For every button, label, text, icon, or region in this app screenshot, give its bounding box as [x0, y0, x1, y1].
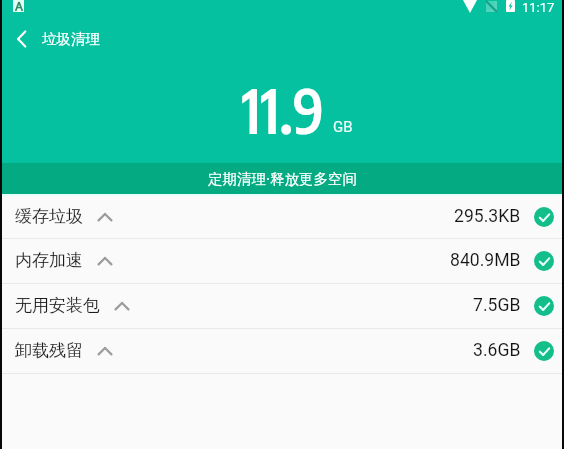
button[interactable]: 内存加速	[0, 239, 564, 284]
staticText: 11.9	[242, 71, 325, 147]
button[interactable]: Selected	[534, 296, 554, 316]
staticText: 无用安装包	[15, 295, 100, 316]
staticText: 11:17	[522, 0, 555, 15]
button[interactable]: Selected	[534, 251, 554, 271]
staticText: 定期清理·释放更多空间	[208, 168, 357, 188]
button[interactable]: Selected	[534, 341, 554, 361]
button[interactable]: 无用安装包	[0, 284, 564, 329]
staticText: 7.5GB	[473, 295, 521, 316]
staticText: 3.6GB	[473, 340, 521, 361]
staticText: GB	[333, 118, 353, 136]
staticText: 840.9MB	[450, 250, 521, 271]
staticText: 垃圾清理	[42, 30, 100, 48]
button[interactable]: 缓存垃圾	[0, 196, 564, 239]
button[interactable]: Selected	[534, 207, 554, 227]
button[interactable]: 卸载残留	[0, 329, 564, 374]
staticText: 内存加速	[15, 250, 83, 271]
staticText: 295.3KB	[454, 206, 521, 227]
button[interactable]: 定期清理·释放更多空间	[0, 163, 564, 194]
staticText: 卸载残留	[15, 340, 83, 361]
staticText: 缓存垃圾	[15, 206, 83, 227]
button[interactable]: Back	[0, 22, 42, 56]
